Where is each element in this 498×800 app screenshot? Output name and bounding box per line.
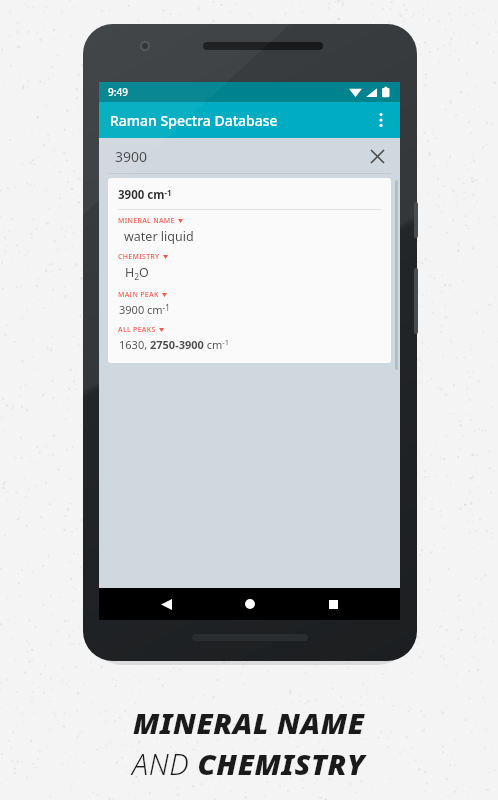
staticText: AND CHEMISTRY: [132, 744, 366, 783]
staticText: ALL PEAKS: [118, 325, 156, 335]
button[interactable]: 3900 cm-1: [108, 178, 391, 363]
staticText: 1630, 2750-3900 cm-1: [119, 337, 229, 352]
staticText: Raman Spectra Database: [110, 111, 278, 130]
button[interactable]: Home: [234, 588, 266, 620]
staticText: H2O: [125, 264, 149, 283]
staticText: 9:49: [108, 85, 128, 99]
staticText: water liquid: [124, 228, 194, 245]
button[interactable]: Back: [150, 588, 182, 620]
staticText: MINERAL NAME: [133, 703, 365, 742]
button[interactable]: More options: [366, 105, 396, 135]
button[interactable]: 3900: [99, 138, 400, 174]
button[interactable]: Clear search: [364, 143, 390, 169]
staticText: MAIN PEAK: [118, 290, 159, 300]
button[interactable]: Recent apps: [317, 588, 349, 620]
staticText: 3900 cm-1: [118, 187, 172, 203]
staticText: 3900 cm-1: [119, 302, 170, 318]
staticText: MINERAL NAME: [118, 216, 175, 226]
staticText: 3900: [115, 147, 148, 166]
staticText: CHEMISTRY: [118, 252, 160, 262]
